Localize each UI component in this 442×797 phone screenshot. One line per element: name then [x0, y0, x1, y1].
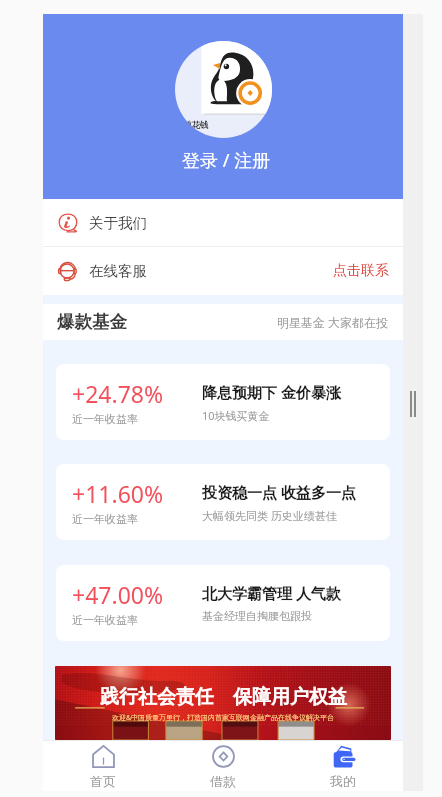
staticText: 在线客服	[89, 262, 147, 280]
button[interactable]: 头像	[175, 41, 272, 138]
other: 关于我们	[57, 212, 79, 234]
staticText: 降息预期下 金价暴涨	[202, 382, 341, 402]
staticText: 爆款基金	[57, 311, 127, 333]
button[interactable]: +11.60%	[56, 464, 390, 540]
staticText: 首页	[90, 773, 116, 789]
button[interactable]: 借款	[163, 740, 283, 791]
staticText: +24.78%	[72, 378, 164, 409]
button[interactable]: +24.78%	[56, 364, 390, 440]
staticText: 近一年收益率	[72, 512, 138, 526]
staticText: 投资稳一点 收益多一点	[202, 482, 356, 502]
staticText: 点击联系	[333, 262, 389, 280]
staticText: 关于我们	[89, 214, 147, 232]
button[interactable]: +47.00%	[56, 565, 390, 641]
staticText: +47.00%	[72, 579, 164, 610]
button[interactable]: 关于我们	[43, 199, 403, 246]
button[interactable]: 登录 / 注册	[182, 148, 271, 173]
button[interactable]: 我的	[283, 740, 403, 791]
staticText: 北大学霸管理 人气款	[202, 583, 341, 603]
button[interactable]: 首页	[43, 740, 163, 791]
staticText: 近一年收益率	[72, 613, 138, 627]
staticText: 近一年收益率	[72, 412, 138, 426]
button[interactable]: 践行社会责任 保障用户权益	[55, 666, 391, 740]
staticText: 欢迎&中国质量万里行，打造国内首家互联网金融产品在线争议解决平台	[112, 713, 335, 723]
staticText: 10块钱买黄金	[202, 408, 270, 423]
other: 在线客服	[57, 260, 79, 282]
staticText: +11.60%	[72, 478, 164, 509]
staticText: 践行社会责任 保障用户权益	[100, 683, 347, 709]
staticText: 明星基金 大家都在投	[277, 314, 389, 330]
staticText: 我的	[330, 773, 356, 789]
staticText: 借款	[210, 773, 236, 789]
staticText: 随花钱	[183, 120, 209, 131]
staticText: 大幅领先同类 历史业绩甚佳	[202, 508, 337, 523]
staticText: 基金经理自掏腰包跟投	[202, 609, 312, 623]
button[interactable]: 在线客服	[43, 247, 403, 295]
